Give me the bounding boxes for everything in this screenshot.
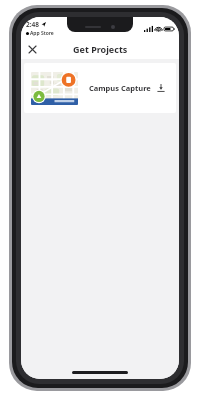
staticText: Campus Capture xyxy=(89,83,151,93)
staticText: Get Projects xyxy=(73,43,128,55)
staticText: App Store xyxy=(30,30,54,37)
button[interactable]: Close xyxy=(24,41,40,57)
staticText: 2:48 xyxy=(26,20,39,29)
button[interactable]: Campus Capture xyxy=(24,63,176,113)
button[interactable]: Download xyxy=(153,80,169,96)
